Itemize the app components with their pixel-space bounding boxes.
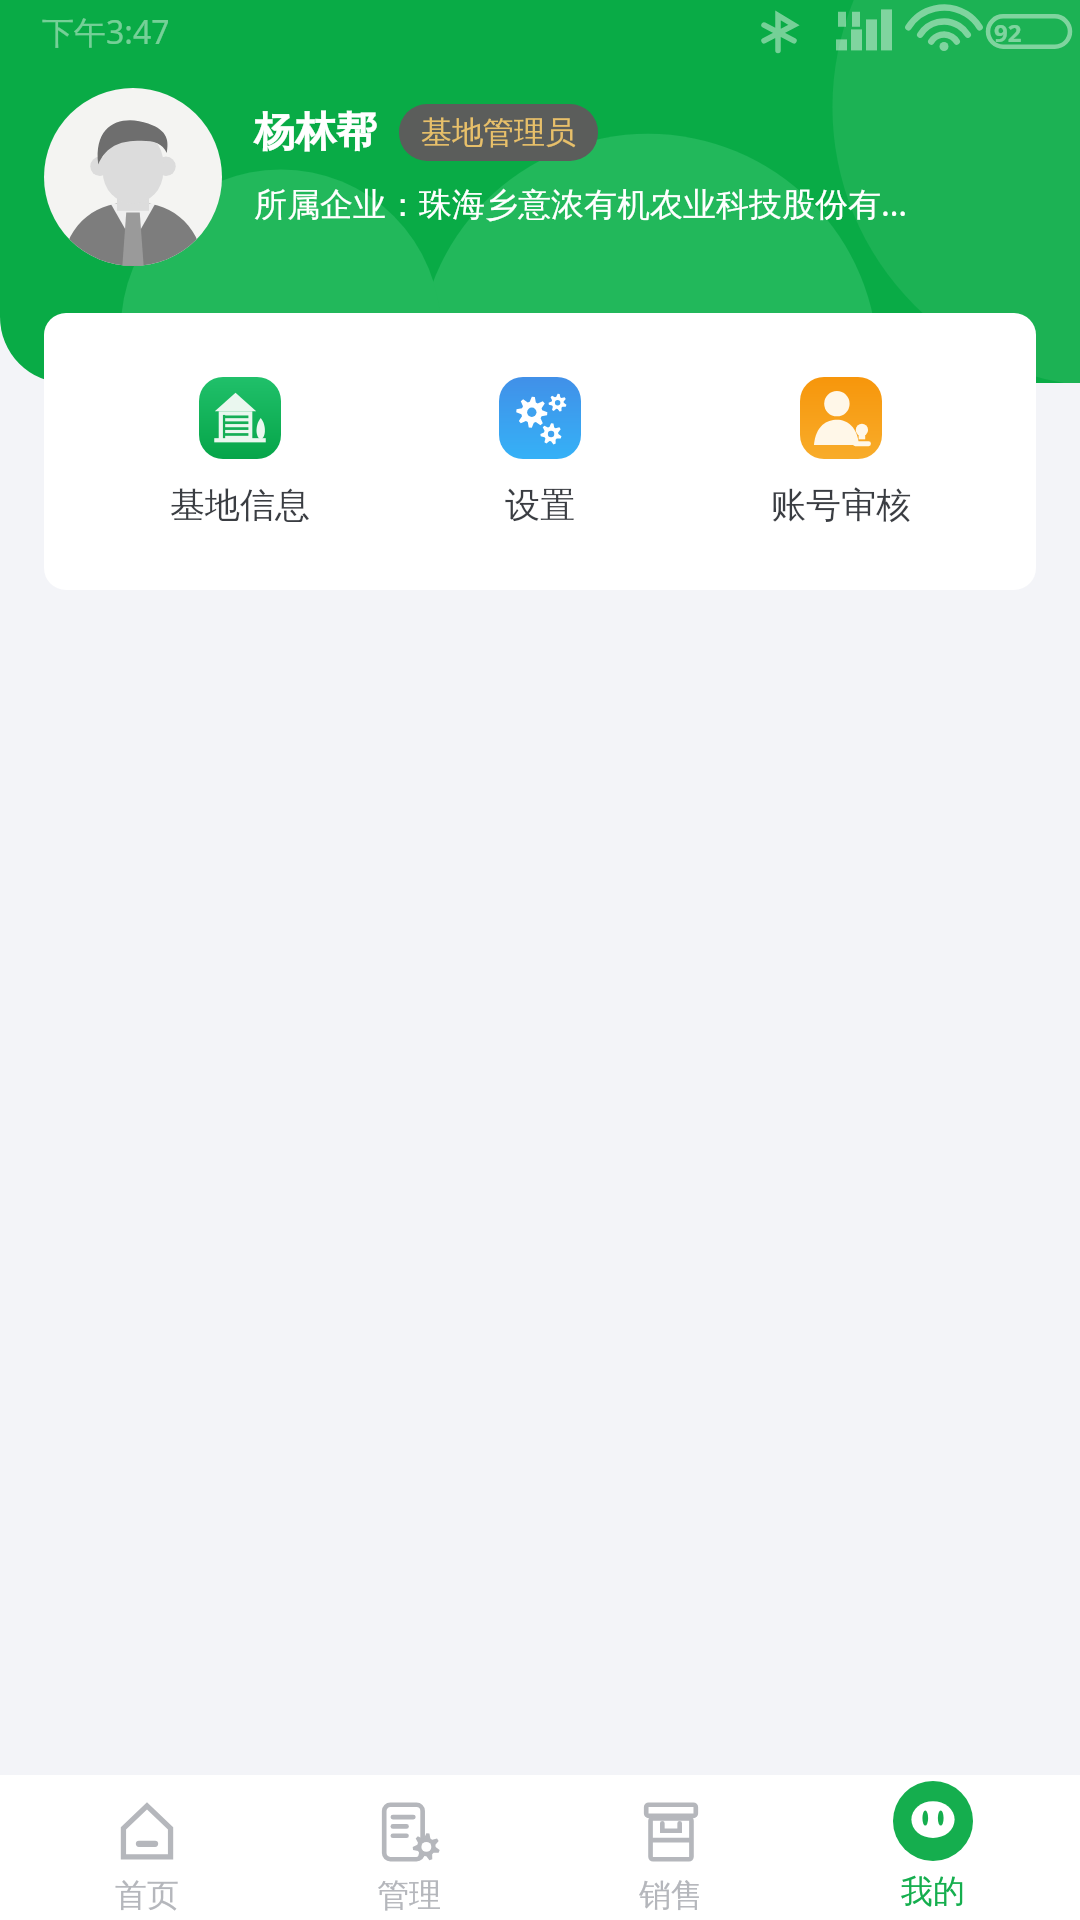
button[interactable]: 设置 <box>435 373 645 531</box>
other: 销售 <box>640 1801 702 1863</box>
button[interactable]: 销售 <box>556 1775 786 1920</box>
staticText: 92 <box>994 16 1022 49</box>
staticText: 下午3:47 <box>42 10 170 54</box>
other: 我的 <box>887 1775 979 1867</box>
button[interactable]: 基地管理员 <box>399 104 598 161</box>
button[interactable]: Profile photo <box>44 88 222 266</box>
staticText: 销售 <box>639 1875 703 1915</box>
staticText: 账号审核 <box>771 483 911 527</box>
button[interactable]: 首页 <box>32 1775 262 1920</box>
button[interactable]: 管理 <box>294 1775 524 1920</box>
staticText: 所属企业：珠海乡意浓有机农业科技股份有… <box>254 181 908 226</box>
other: 首页 <box>116 1801 178 1863</box>
staticText: 基地管理员 <box>421 113 576 152</box>
button[interactable]: 基地信息 <box>135 373 345 531</box>
button[interactable]: 我的 <box>818 1775 1048 1920</box>
staticText: 管理 <box>377 1875 441 1915</box>
staticText: 我的 <box>901 1871 965 1911</box>
staticText: 基地信息 <box>170 483 310 527</box>
staticText: 首页 <box>115 1875 179 1915</box>
other: 管理 <box>378 1801 440 1863</box>
button[interactable]: 账号审核 <box>736 373 946 531</box>
staticText: 设置 <box>505 483 575 527</box>
staticText: 杨林帮 <box>254 107 377 159</box>
